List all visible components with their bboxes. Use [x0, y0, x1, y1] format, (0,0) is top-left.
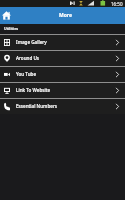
- button[interactable]: You Tube: [0, 67, 125, 82]
- button[interactable]: Image Gallery: [0, 35, 125, 50]
- button[interactable]: Essential Numbers: [0, 99, 125, 114]
- staticText: More: [59, 12, 72, 19]
- staticText: Around Us: [16, 55, 40, 61]
- staticText: You Tube: [16, 71, 37, 77]
- staticText: 16:50: [111, 1, 123, 7]
- staticText: Link To Website: [16, 87, 51, 93]
- button[interactable]: Home: [0, 7, 15, 24]
- staticText: Image Gallery: [16, 39, 47, 45]
- button[interactable]: Around Us: [0, 51, 125, 66]
- staticText: Utilities: [4, 26, 19, 31]
- staticText: Essential Numbers: [16, 103, 58, 109]
- button[interactable]: Link To Website: [0, 83, 125, 98]
